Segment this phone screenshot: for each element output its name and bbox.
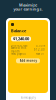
staticText: Add money bbox=[19, 59, 36, 62]
staticText: Maximize bbox=[19, 2, 37, 8]
staticText: Earned this month bbox=[11, 46, 26, 53]
button[interactable]: Add money bbox=[16, 58, 40, 63]
staticText: 4.50% bbox=[36, 44, 45, 47]
staticText: $1,240.00 bbox=[13, 36, 29, 41]
staticText: your earnings. bbox=[13, 6, 42, 12]
staticText: Balance bbox=[11, 28, 26, 33]
button[interactable]: Terms apply bbox=[6, 93, 50, 99]
staticText: $12.40 bbox=[34, 48, 45, 51]
staticText: Next payout bbox=[11, 52, 26, 55]
staticText: Terms apply bbox=[20, 96, 35, 99]
staticText: Mar 01 bbox=[36, 52, 45, 55]
staticText: Interest rate bbox=[11, 44, 28, 47]
